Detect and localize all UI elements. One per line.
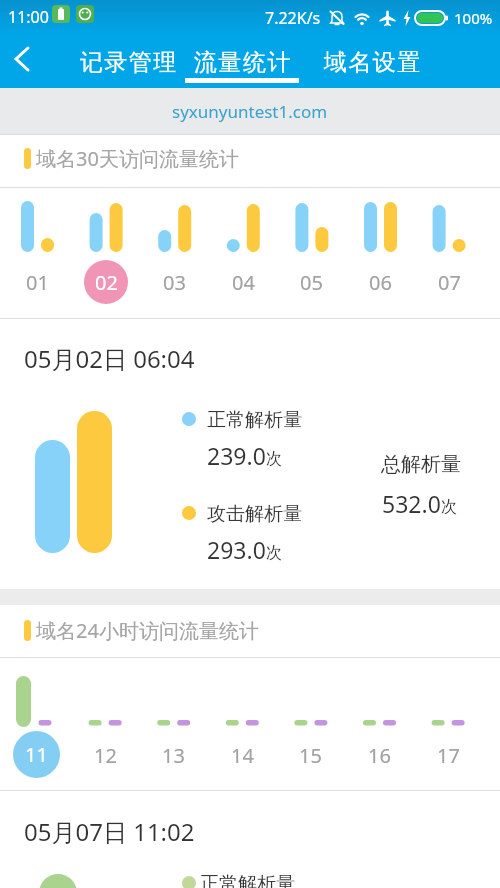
staticText: 04 — [232, 269, 255, 296]
staticText: 239.0 — [207, 440, 266, 471]
staticText: 01 — [26, 269, 49, 296]
button[interactable]: 07 — [427, 260, 471, 304]
staticText: 11 — [25, 741, 48, 768]
button[interactable]: 01 — [15, 260, 59, 304]
staticText: 域名24小时访问流量统计 — [36, 617, 259, 644]
staticText: 记录管理 — [79, 48, 177, 77]
staticText: 域名30天访问流量统计 — [36, 145, 239, 172]
button[interactable]: 11 — [13, 731, 60, 778]
button[interactable]: 记录管理 — [66, 36, 190, 88]
staticText: 12 — [94, 742, 117, 769]
staticText: 13 — [162, 742, 185, 769]
button[interactable]: 14 — [220, 733, 264, 777]
button[interactable]: 12 — [83, 733, 127, 777]
staticText: 攻击解析量 — [207, 502, 302, 526]
button[interactable]: 域名24小时访问流量统计 — [0, 607, 500, 653]
button[interactable]: 15 — [288, 733, 332, 777]
staticText: 03 — [163, 269, 186, 296]
staticText: 域名设置 — [323, 48, 421, 77]
staticText: 06 — [369, 269, 392, 296]
staticText: 次 — [441, 497, 457, 517]
button[interactable]: 域名30天访问流量统计 — [0, 135, 500, 181]
button[interactable]: 02 — [84, 260, 128, 304]
staticText: 15 — [299, 742, 322, 769]
staticText: 05月07日 11:02 — [24, 815, 195, 848]
staticText: 正常解析量 — [207, 408, 302, 432]
staticText: 11:00 — [8, 6, 49, 28]
button[interactable]: 04 — [221, 260, 265, 304]
button[interactable]: syxunyuntest1.com — [0, 88, 500, 134]
button[interactable] — [0, 36, 52, 88]
staticText: 16 — [368, 742, 391, 769]
button[interactable]: 17 — [426, 733, 470, 777]
button[interactable]: 域名设置 — [310, 36, 434, 88]
staticText: 02 — [95, 269, 118, 296]
button[interactable]: 16 — [357, 733, 401, 777]
button[interactable]: 06 — [358, 260, 402, 304]
staticText: 正常解析量 — [200, 872, 295, 888]
staticText: 532.0 — [382, 488, 441, 519]
staticText: 7.22K/s — [265, 7, 321, 29]
button[interactable]: 03 — [152, 260, 196, 304]
staticText: 07 — [438, 269, 461, 296]
staticText: 05 — [300, 269, 323, 296]
staticText: 17 — [437, 742, 460, 769]
staticText: 流量统计 — [193, 48, 291, 77]
staticText: 次 — [266, 449, 282, 469]
button[interactable]: 13 — [151, 733, 195, 777]
staticText: 293.0 — [207, 534, 266, 565]
staticText: syxunyuntest1.com — [172, 100, 328, 123]
staticText: 14 — [231, 742, 254, 769]
staticText: 05月02日 06:04 — [24, 342, 195, 375]
staticText: 次 — [266, 543, 282, 563]
button[interactable]: 05 — [289, 260, 333, 304]
staticText: 100% — [454, 8, 493, 28]
staticText: 总解析量 — [381, 452, 461, 477]
button[interactable]: 流量统计 — [180, 36, 304, 88]
